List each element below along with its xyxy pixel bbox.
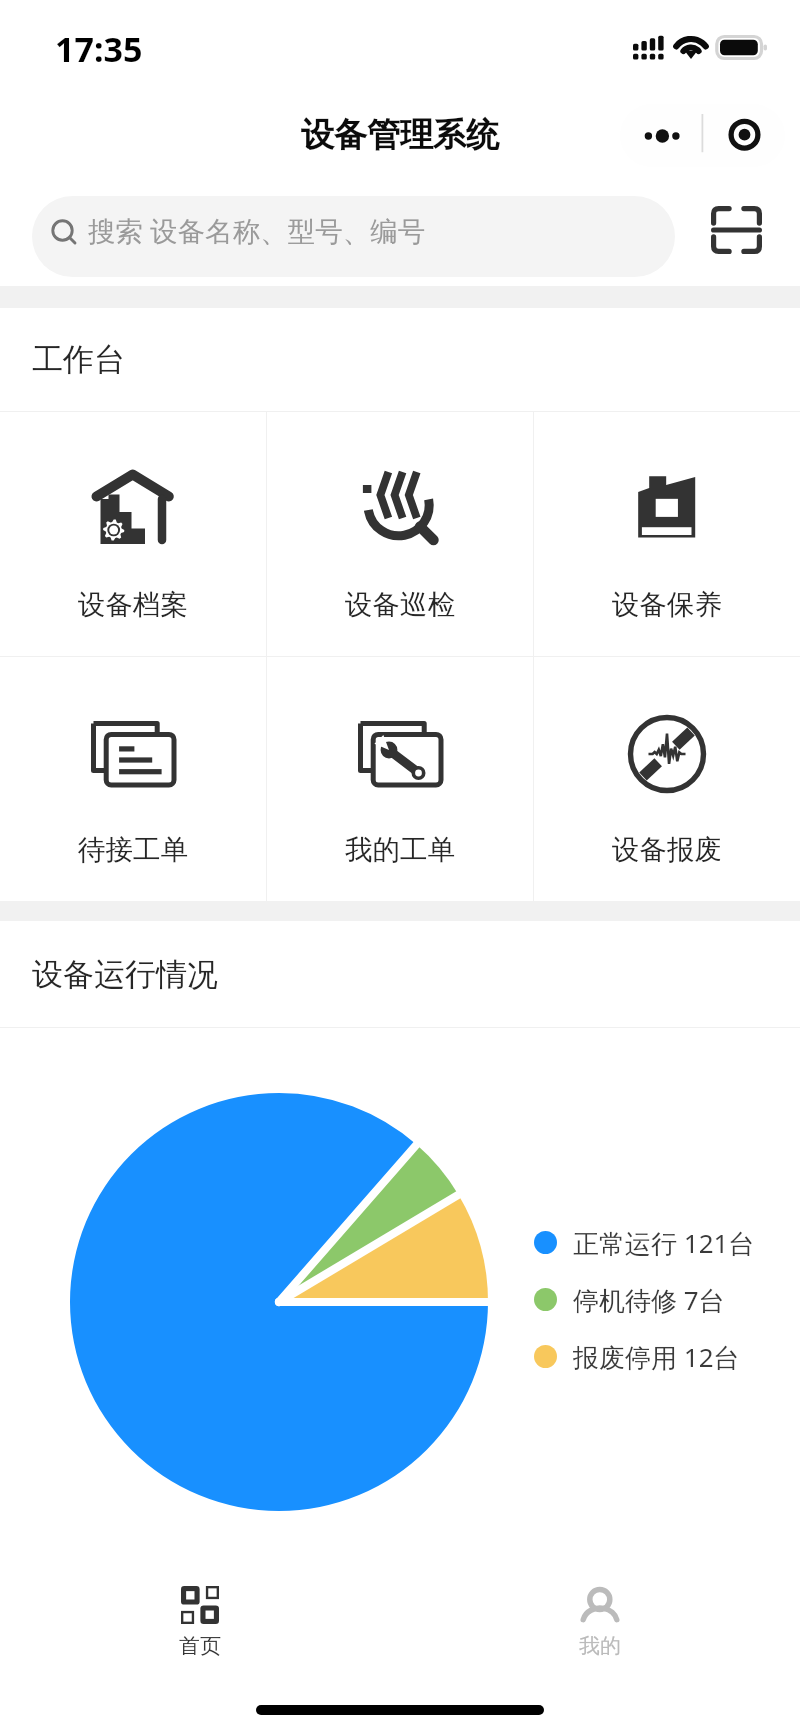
button[interactable]: 设备档案 [0, 412, 266, 656]
staticText: 首页 [179, 1633, 221, 1659]
staticText: 停机待修 7台 [573, 1282, 725, 1316]
button[interactable]: 设备巡检 [267, 412, 533, 656]
button[interactable]: 首页 [0, 1577, 400, 1678]
staticText: 设备巡检 [345, 588, 455, 623]
button[interactable]: 设备保养 [534, 412, 800, 656]
staticText: 设备管理系统 [301, 114, 499, 156]
staticText: 设备保养 [612, 588, 722, 623]
button[interactable]: 设备报废 [534, 657, 800, 901]
staticText: 我的 [579, 1633, 621, 1659]
staticText: 搜索 设备名称、型号、编号 [88, 212, 426, 250]
button[interactable]: 待接工单 [0, 657, 266, 901]
button[interactable]: Scan QR code [711, 206, 762, 254]
button[interactable]: 我的工单 [267, 657, 533, 901]
staticText: 设备报废 [612, 833, 722, 868]
button[interactable]: 我的 [400, 1577, 800, 1678]
staticText: 待接工单 [78, 833, 188, 868]
staticText: 报废停用 12台 [573, 1339, 740, 1373]
staticText: 我的工单 [345, 833, 455, 868]
button[interactable]: 搜索 设备名称、型号、编号 [32, 196, 675, 277]
staticText: 17:35 [55, 26, 143, 72]
button[interactable]: More options and mini program menu [620, 104, 785, 167]
staticText: 工作台 [32, 340, 125, 379]
staticText: 正常运行 121台 [573, 1225, 755, 1259]
staticText: 设备运行情况 [32, 955, 218, 994]
staticText: 设备档案 [78, 588, 188, 623]
